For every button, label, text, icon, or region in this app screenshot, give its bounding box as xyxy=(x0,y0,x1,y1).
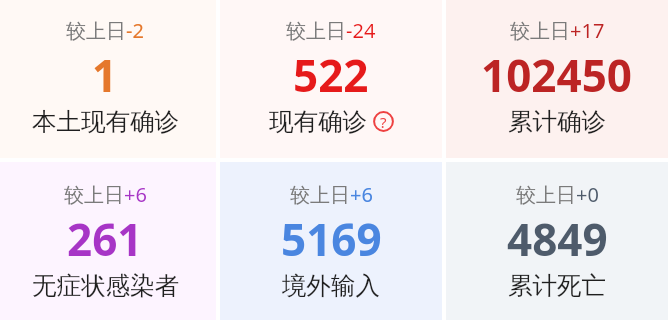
staticText: 现有确诊 xyxy=(269,106,367,137)
button[interactable]: 较上日+17 xyxy=(446,0,668,158)
staticText: 较上日+17 xyxy=(510,17,605,44)
staticText: 5169 xyxy=(281,209,382,269)
staticText: 较上日-2 xyxy=(66,17,144,44)
staticText: 较上日+6 xyxy=(290,181,373,208)
staticText: 522 xyxy=(293,45,369,105)
button[interactable]: 较上日+6 xyxy=(220,162,442,320)
staticText: 261 xyxy=(67,209,143,269)
staticText: 本土现有确诊 xyxy=(32,106,179,137)
staticText: 较上日-24 xyxy=(286,17,376,44)
staticText: 4849 xyxy=(507,209,608,269)
staticText: 1 xyxy=(92,45,118,105)
button[interactable]: 较上日-2 xyxy=(0,0,216,158)
staticText: 较上日+6 xyxy=(64,181,147,208)
staticText: 较上日+0 xyxy=(516,181,599,208)
staticText: 累计确诊 xyxy=(508,106,606,137)
button[interactable]: 较上日+6 xyxy=(0,162,216,320)
staticText: 102450 xyxy=(481,45,633,105)
staticText: ? xyxy=(380,112,387,132)
button[interactable]: 较上日+0 xyxy=(446,162,668,320)
staticText: 累计死亡 xyxy=(508,270,606,301)
button[interactable]: About 现有确诊 xyxy=(373,111,394,132)
staticText: 无症状感染者 xyxy=(32,270,179,301)
button[interactable]: 较上日-24 xyxy=(220,0,442,158)
staticText: 境外输入 xyxy=(282,270,380,301)
